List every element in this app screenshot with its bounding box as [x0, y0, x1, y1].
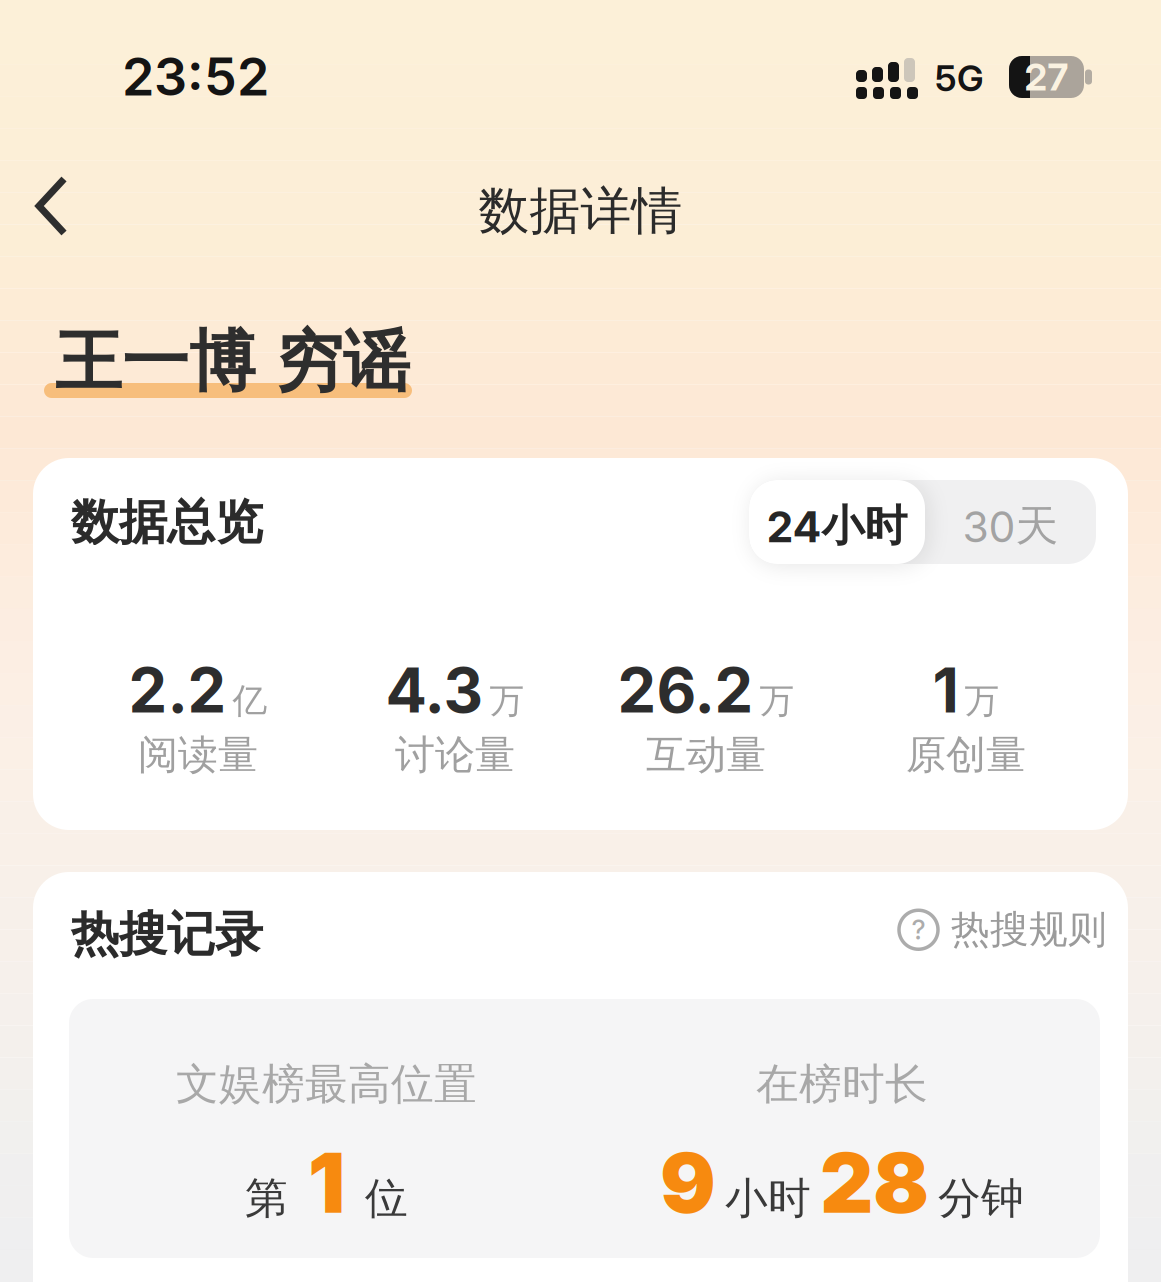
- staticText: 数据详情: [478, 180, 682, 242]
- staticText: 26.2: [617, 654, 753, 726]
- staticText: ?: [911, 914, 925, 945]
- staticText: 4.3: [385, 654, 483, 726]
- staticText: 阅读量: [138, 730, 258, 779]
- staticText: 文娱榜最高位置: [176, 1058, 477, 1110]
- staticText: 原创量: [906, 730, 1026, 779]
- staticText: 亿: [232, 680, 267, 722]
- staticText: 1: [308, 1134, 345, 1231]
- staticText: 2.2: [128, 654, 226, 726]
- staticText: 万: [759, 680, 794, 722]
- staticText: 分钟: [938, 1172, 1024, 1225]
- staticText: 热搜记录: [71, 905, 263, 964]
- button[interactable]: 24小时: [749, 480, 925, 564]
- staticText: 小时: [725, 1172, 811, 1225]
- staticText: 1: [932, 654, 958, 726]
- staticText: 5G: [935, 57, 984, 99]
- staticText: 互动量: [646, 730, 766, 779]
- staticText: 24小时: [766, 500, 907, 552]
- button[interactable]: Back: [34, 175, 68, 237]
- staticText: 讨论量: [395, 730, 515, 779]
- staticText: 28: [820, 1134, 929, 1231]
- staticText: 位: [365, 1172, 408, 1225]
- staticText: 30天: [962, 500, 1058, 552]
- staticText: 在榜时长: [756, 1058, 928, 1110]
- staticText: 热搜规则: [951, 906, 1107, 953]
- staticText: 27: [1024, 55, 1068, 99]
- staticText: 万: [964, 680, 999, 722]
- button[interactable]: 30天: [925, 480, 1096, 564]
- staticText: 23:52: [122, 46, 269, 107]
- staticText: 数据总览: [71, 493, 263, 552]
- button[interactable]: ?: [899, 906, 1107, 953]
- staticText: 王一博 穷谣: [55, 321, 410, 403]
- staticText: 第: [245, 1172, 288, 1225]
- staticText: 万: [489, 680, 524, 722]
- staticText: 9: [660, 1134, 716, 1231]
